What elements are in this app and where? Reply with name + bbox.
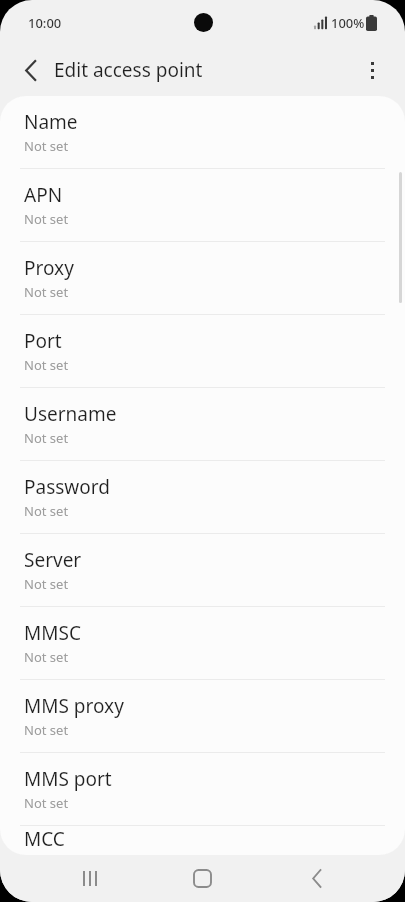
staticText: Not set <box>24 283 69 301</box>
staticText: Not set <box>24 429 69 447</box>
button[interactable]: Home <box>178 855 226 902</box>
button[interactable]: More options <box>352 50 392 90</box>
staticText: Proxy <box>24 255 74 281</box>
staticText: Not set <box>24 502 69 520</box>
button[interactable]: APN <box>0 169 405 241</box>
staticText: Username <box>24 401 117 427</box>
button[interactable]: Username <box>0 388 405 460</box>
staticText: MCC <box>24 826 65 852</box>
staticText: APN <box>24 182 63 208</box>
staticText: MMS proxy <box>24 693 124 719</box>
staticText: Name <box>24 109 78 135</box>
staticText: Not set <box>24 794 69 812</box>
button[interactable]: Name <box>0 96 405 168</box>
staticText: MMSC <box>24 620 81 646</box>
staticText: Not set <box>24 137 69 155</box>
button[interactable]: Server <box>0 534 405 606</box>
staticText: Password <box>24 474 110 500</box>
button[interactable]: MMSC <box>0 607 405 679</box>
staticText: Port <box>24 328 62 354</box>
button[interactable]: Port <box>0 315 405 387</box>
staticText: Not set <box>24 356 69 374</box>
button[interactable]: Back <box>293 855 341 902</box>
staticText: Not set <box>24 210 69 228</box>
staticText: Edit access point <box>54 57 203 83</box>
button[interactable]: MCC <box>0 826 405 855</box>
staticText: MMS port <box>24 766 112 792</box>
staticText: 100% <box>331 14 365 32</box>
staticText: 10:00 <box>28 14 62 32</box>
button[interactable]: Recents <box>66 855 114 902</box>
button[interactable]: Password <box>0 461 405 533</box>
button[interactable]: Back <box>11 50 51 90</box>
staticText: Not set <box>24 721 69 739</box>
button[interactable]: MMS proxy <box>0 680 405 752</box>
button[interactable]: Proxy <box>0 242 405 314</box>
staticText: Server <box>24 547 82 573</box>
staticText: Not set <box>24 575 69 593</box>
button[interactable]: MMS port <box>0 753 405 825</box>
staticText: Not set <box>24 648 69 666</box>
